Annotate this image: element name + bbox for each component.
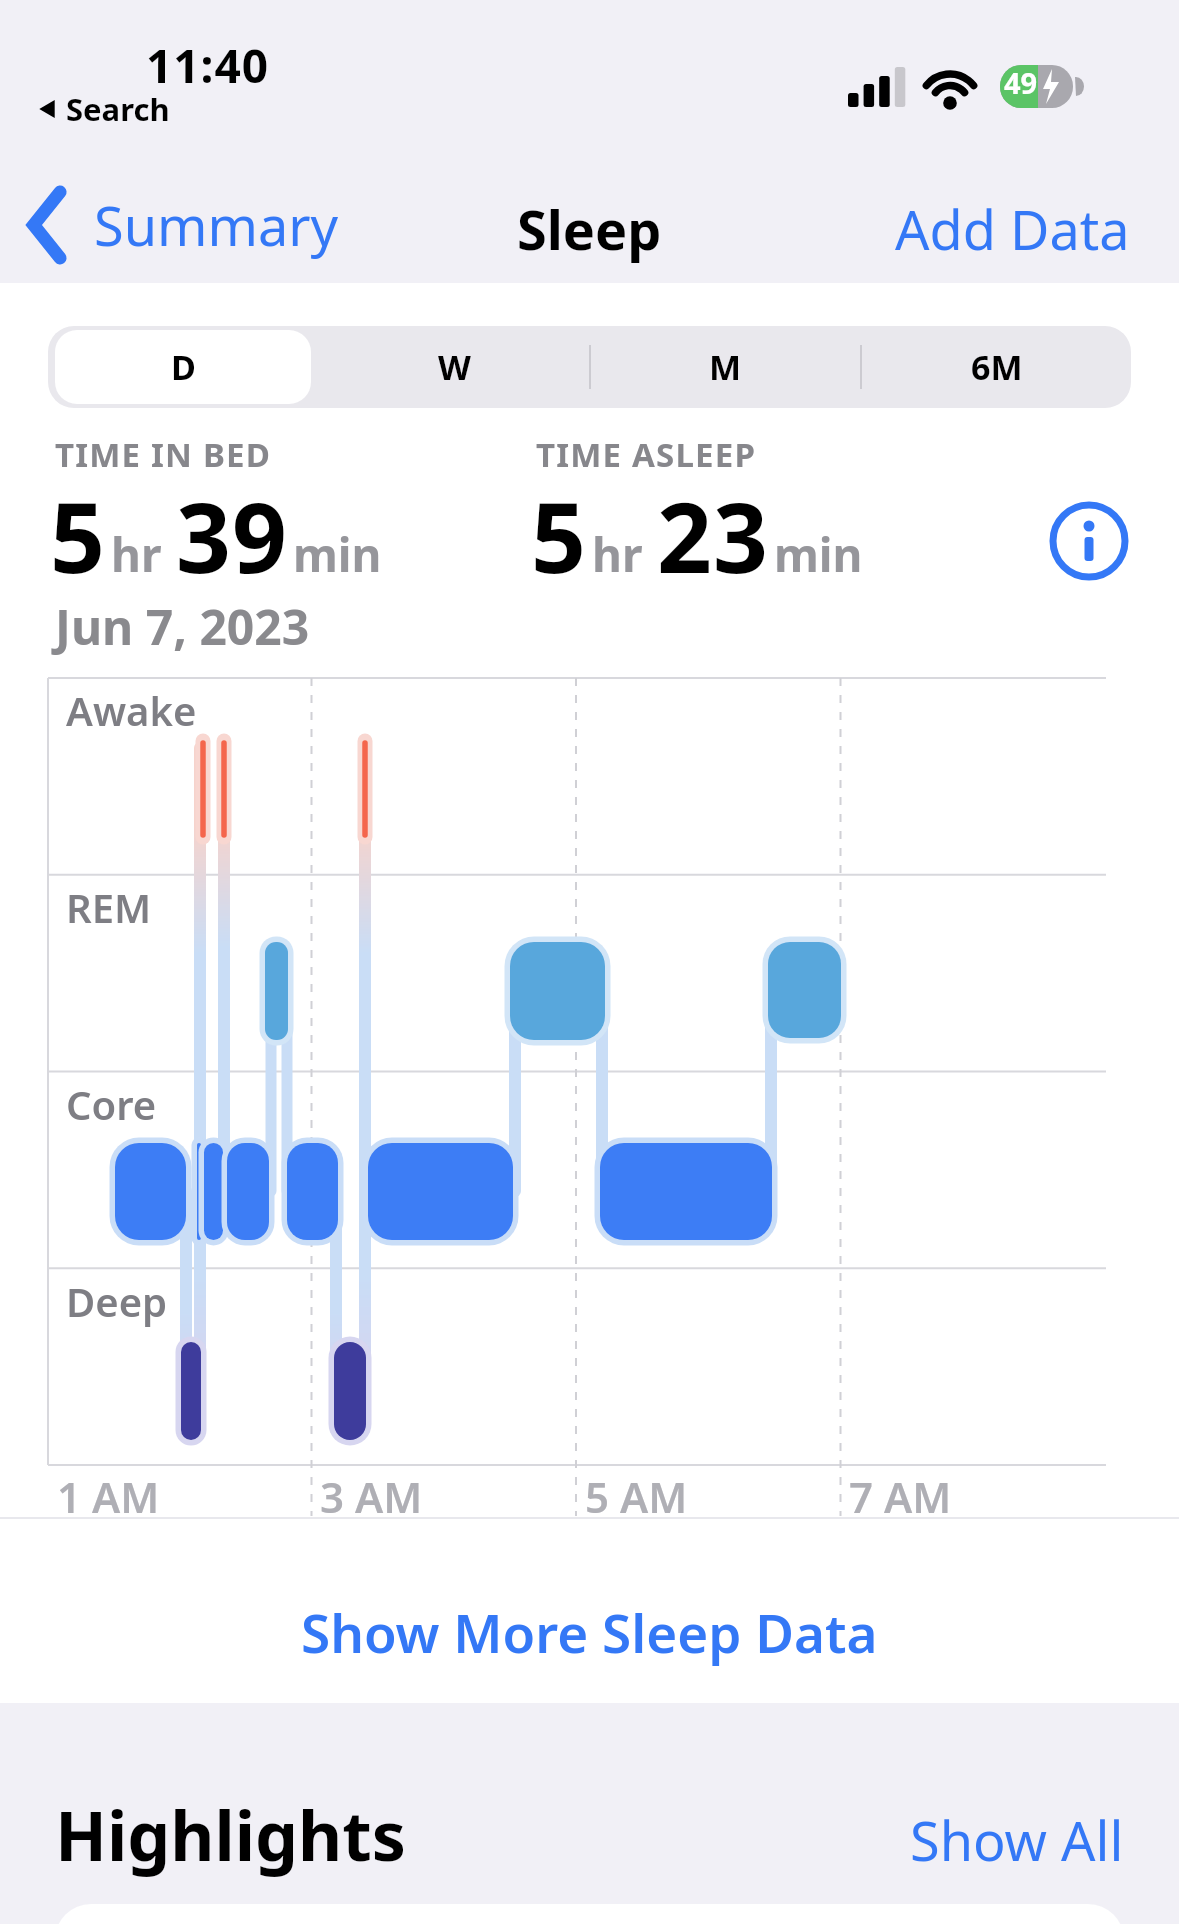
button[interactable]	[1048, 500, 1130, 582]
staticText: Deep	[66, 1274, 168, 1328]
staticText: 7 AM	[849, 1468, 952, 1525]
staticText: min	[774, 523, 863, 586]
staticText: 6M	[971, 344, 1023, 390]
staticText: Show More Sleep Data	[301, 1596, 878, 1668]
staticText: 49	[1004, 63, 1038, 102]
staticText: D	[171, 344, 196, 390]
staticText: W	[438, 344, 471, 390]
button[interactable]: Show More Sleep Data	[0, 1596, 1179, 1668]
staticText: 5	[531, 470, 587, 601]
staticText: Jun 7, 2023	[55, 594, 310, 659]
button[interactable]: 6M	[861, 326, 1132, 408]
button[interactable]: W	[319, 326, 590, 408]
staticText: 11:40	[146, 34, 270, 97]
staticText: REM	[66, 880, 152, 934]
button[interactable]: Add Data	[880, 192, 1130, 262]
staticText: Search	[66, 88, 170, 130]
staticText: Core	[66, 1077, 157, 1131]
staticText: 23	[657, 470, 769, 601]
button[interactable]: M	[590, 326, 861, 408]
staticText: TIME IN BED	[55, 432, 272, 477]
staticText: M	[709, 344, 742, 390]
staticText: Show All	[910, 1803, 1124, 1873]
button[interactable]: D	[48, 326, 319, 408]
staticText: hr	[111, 523, 162, 586]
staticText: 3 AM	[320, 1468, 423, 1525]
staticText: TIME ASLEEP	[536, 432, 757, 477]
staticText: min	[293, 523, 382, 586]
staticText: Highlights	[55, 1788, 406, 1881]
staticText: Sleep	[517, 192, 662, 266]
staticText: Add Data	[895, 192, 1130, 262]
button[interactable]: Summary	[24, 186, 339, 264]
staticText: Awake	[66, 683, 197, 737]
staticText: 1 AM	[57, 1468, 160, 1525]
staticText: 5	[50, 470, 106, 601]
button[interactable]: Show All	[874, 1803, 1124, 1873]
staticText: hr	[592, 523, 643, 586]
staticText: Summary	[94, 188, 339, 262]
staticText: 5 AM	[585, 1468, 688, 1525]
staticText: 39	[176, 470, 288, 601]
